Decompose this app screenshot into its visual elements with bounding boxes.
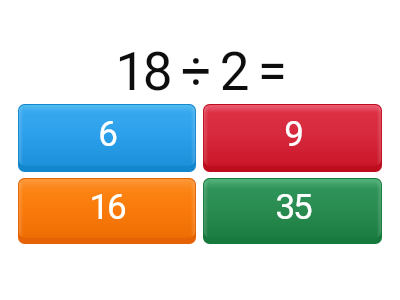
button[interactable]: 35 bbox=[203, 178, 382, 244]
staticText: 18 ÷ 2 = bbox=[115, 41, 285, 103]
staticText: 35 bbox=[275, 187, 311, 228]
button[interactable]: 6 bbox=[18, 104, 196, 172]
button[interactable]: 9 bbox=[203, 104, 382, 172]
staticText: 16 bbox=[89, 187, 125, 228]
button[interactable]: 16 bbox=[18, 178, 196, 244]
staticText: 9 bbox=[284, 114, 302, 155]
staticText: 6 bbox=[98, 114, 116, 155]
